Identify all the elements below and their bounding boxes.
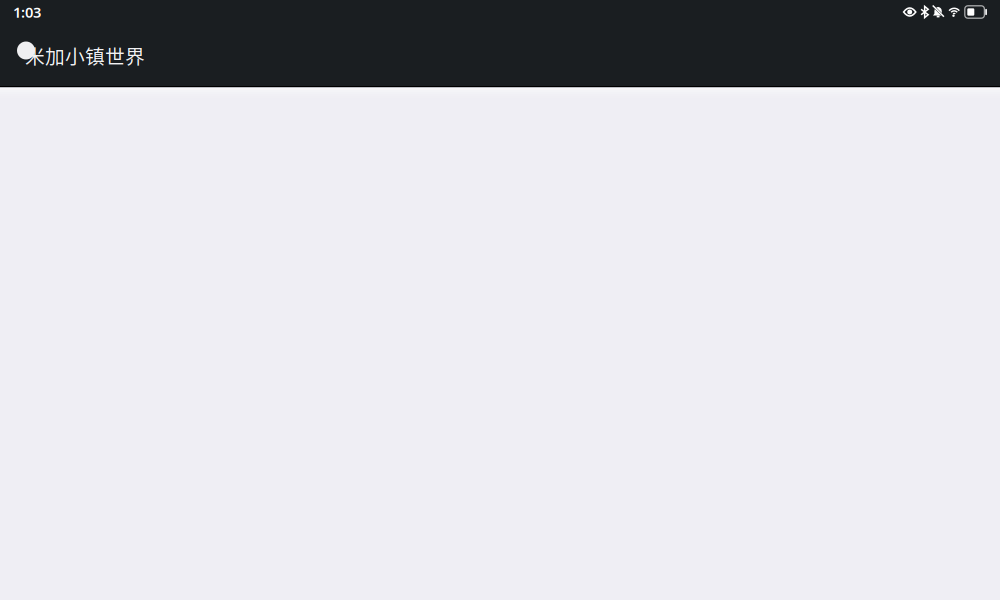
button[interactable]: 米加小镇世界 — page title	[0, 24, 1000, 86]
staticText: 1:03	[13, 2, 41, 22]
staticText: 米加小镇世界	[25, 41, 145, 70]
